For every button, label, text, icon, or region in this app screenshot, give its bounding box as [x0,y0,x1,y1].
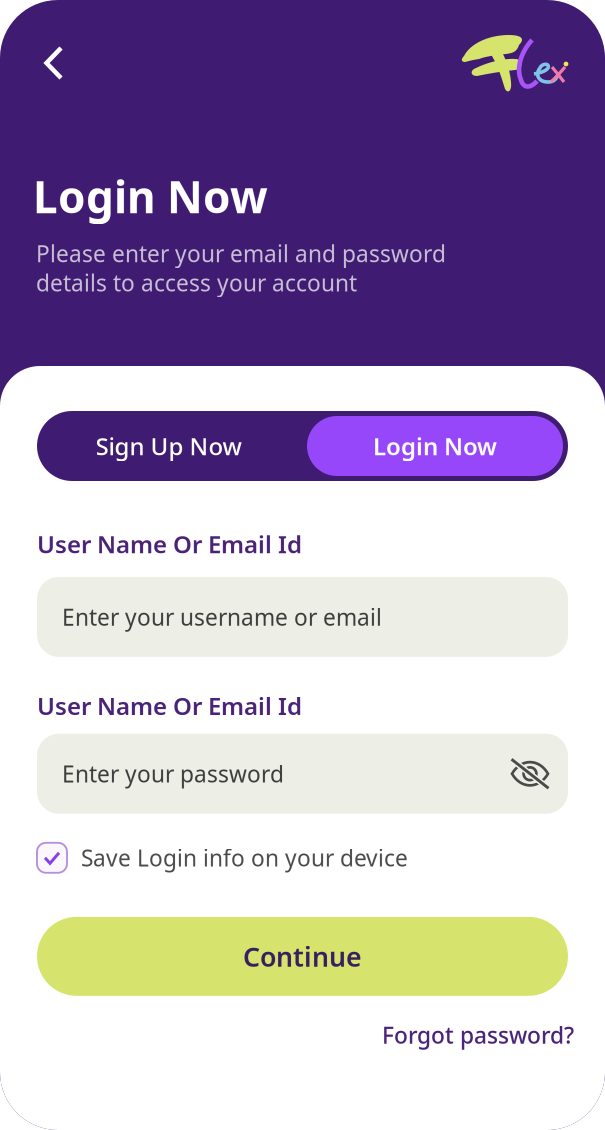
staticText: Please enter your email and password [36,238,446,268]
staticText: User Name Or Email Id [37,690,302,722]
staticText: Enter your username or email [62,602,382,632]
button[interactable]: Save Login info on your device [37,843,605,873]
staticText: Continue [243,939,362,974]
button[interactable]: Show password [509,757,551,791]
staticText: details to access your account [36,267,357,298]
staticText: Forgot password? [382,1020,574,1050]
staticText: Login Now [373,430,497,462]
button[interactable]: Continue [37,917,568,996]
staticText: Sign Up Now [95,430,241,462]
staticText: Login Now [33,167,268,225]
button[interactable]: Sign Up Now [42,416,307,476]
button[interactable]: Login Now [307,416,563,476]
staticText: Enter your password [62,759,284,789]
staticText: User Name Or Email Id [37,528,302,560]
button[interactable]: Forgot password? [382,1020,574,1050]
button[interactable]: Back [28,37,80,89]
staticText: Save Login info on your device [81,843,408,873]
